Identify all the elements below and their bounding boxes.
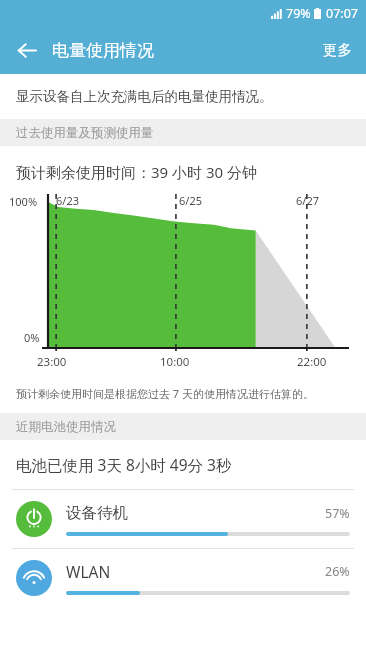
staticText: 07:07 <box>326 5 358 22</box>
button[interactable]: 设备待机 <box>0 490 366 548</box>
staticText: 显示设备自上次充满电后的电量使用情况。 <box>16 88 366 105</box>
staticText: WLAN <box>66 561 325 582</box>
staticText: 更多 <box>323 41 352 59</box>
staticText: 0% <box>24 330 40 345</box>
staticText: 电量使用情况 <box>52 40 154 61</box>
staticText: 57% <box>325 505 350 522</box>
staticText: 79% <box>286 5 311 22</box>
staticText: 6/23 <box>56 193 79 208</box>
staticText: 26% <box>325 563 350 580</box>
staticText: 近期电池使用情况 <box>16 419 116 435</box>
staticText: 预计剩余使用时间：39 小时 30 分钟 <box>16 162 366 182</box>
staticText: 电池已使用 3天 8小时 49分 3秒 <box>16 454 366 475</box>
staticText: 10:00 <box>160 354 190 370</box>
staticText: 6/27 <box>296 193 319 208</box>
staticText: 22:00 <box>297 354 327 370</box>
staticText: 100% <box>9 194 38 209</box>
staticText: 预计剩余使用时间是根据您过去 7 天的使用情况进行估算的。 <box>16 386 350 401</box>
staticText: 6/25 <box>179 193 202 208</box>
button[interactable]: Back <box>8 32 44 68</box>
staticText: 过去使用量及预测使用量 <box>16 125 154 141</box>
button[interactable]: 更多 <box>309 31 366 69</box>
staticText: 设备待机 <box>66 503 325 523</box>
button[interactable]: WLAN <box>0 549 366 607</box>
staticText: 23:00 <box>37 354 67 370</box>
